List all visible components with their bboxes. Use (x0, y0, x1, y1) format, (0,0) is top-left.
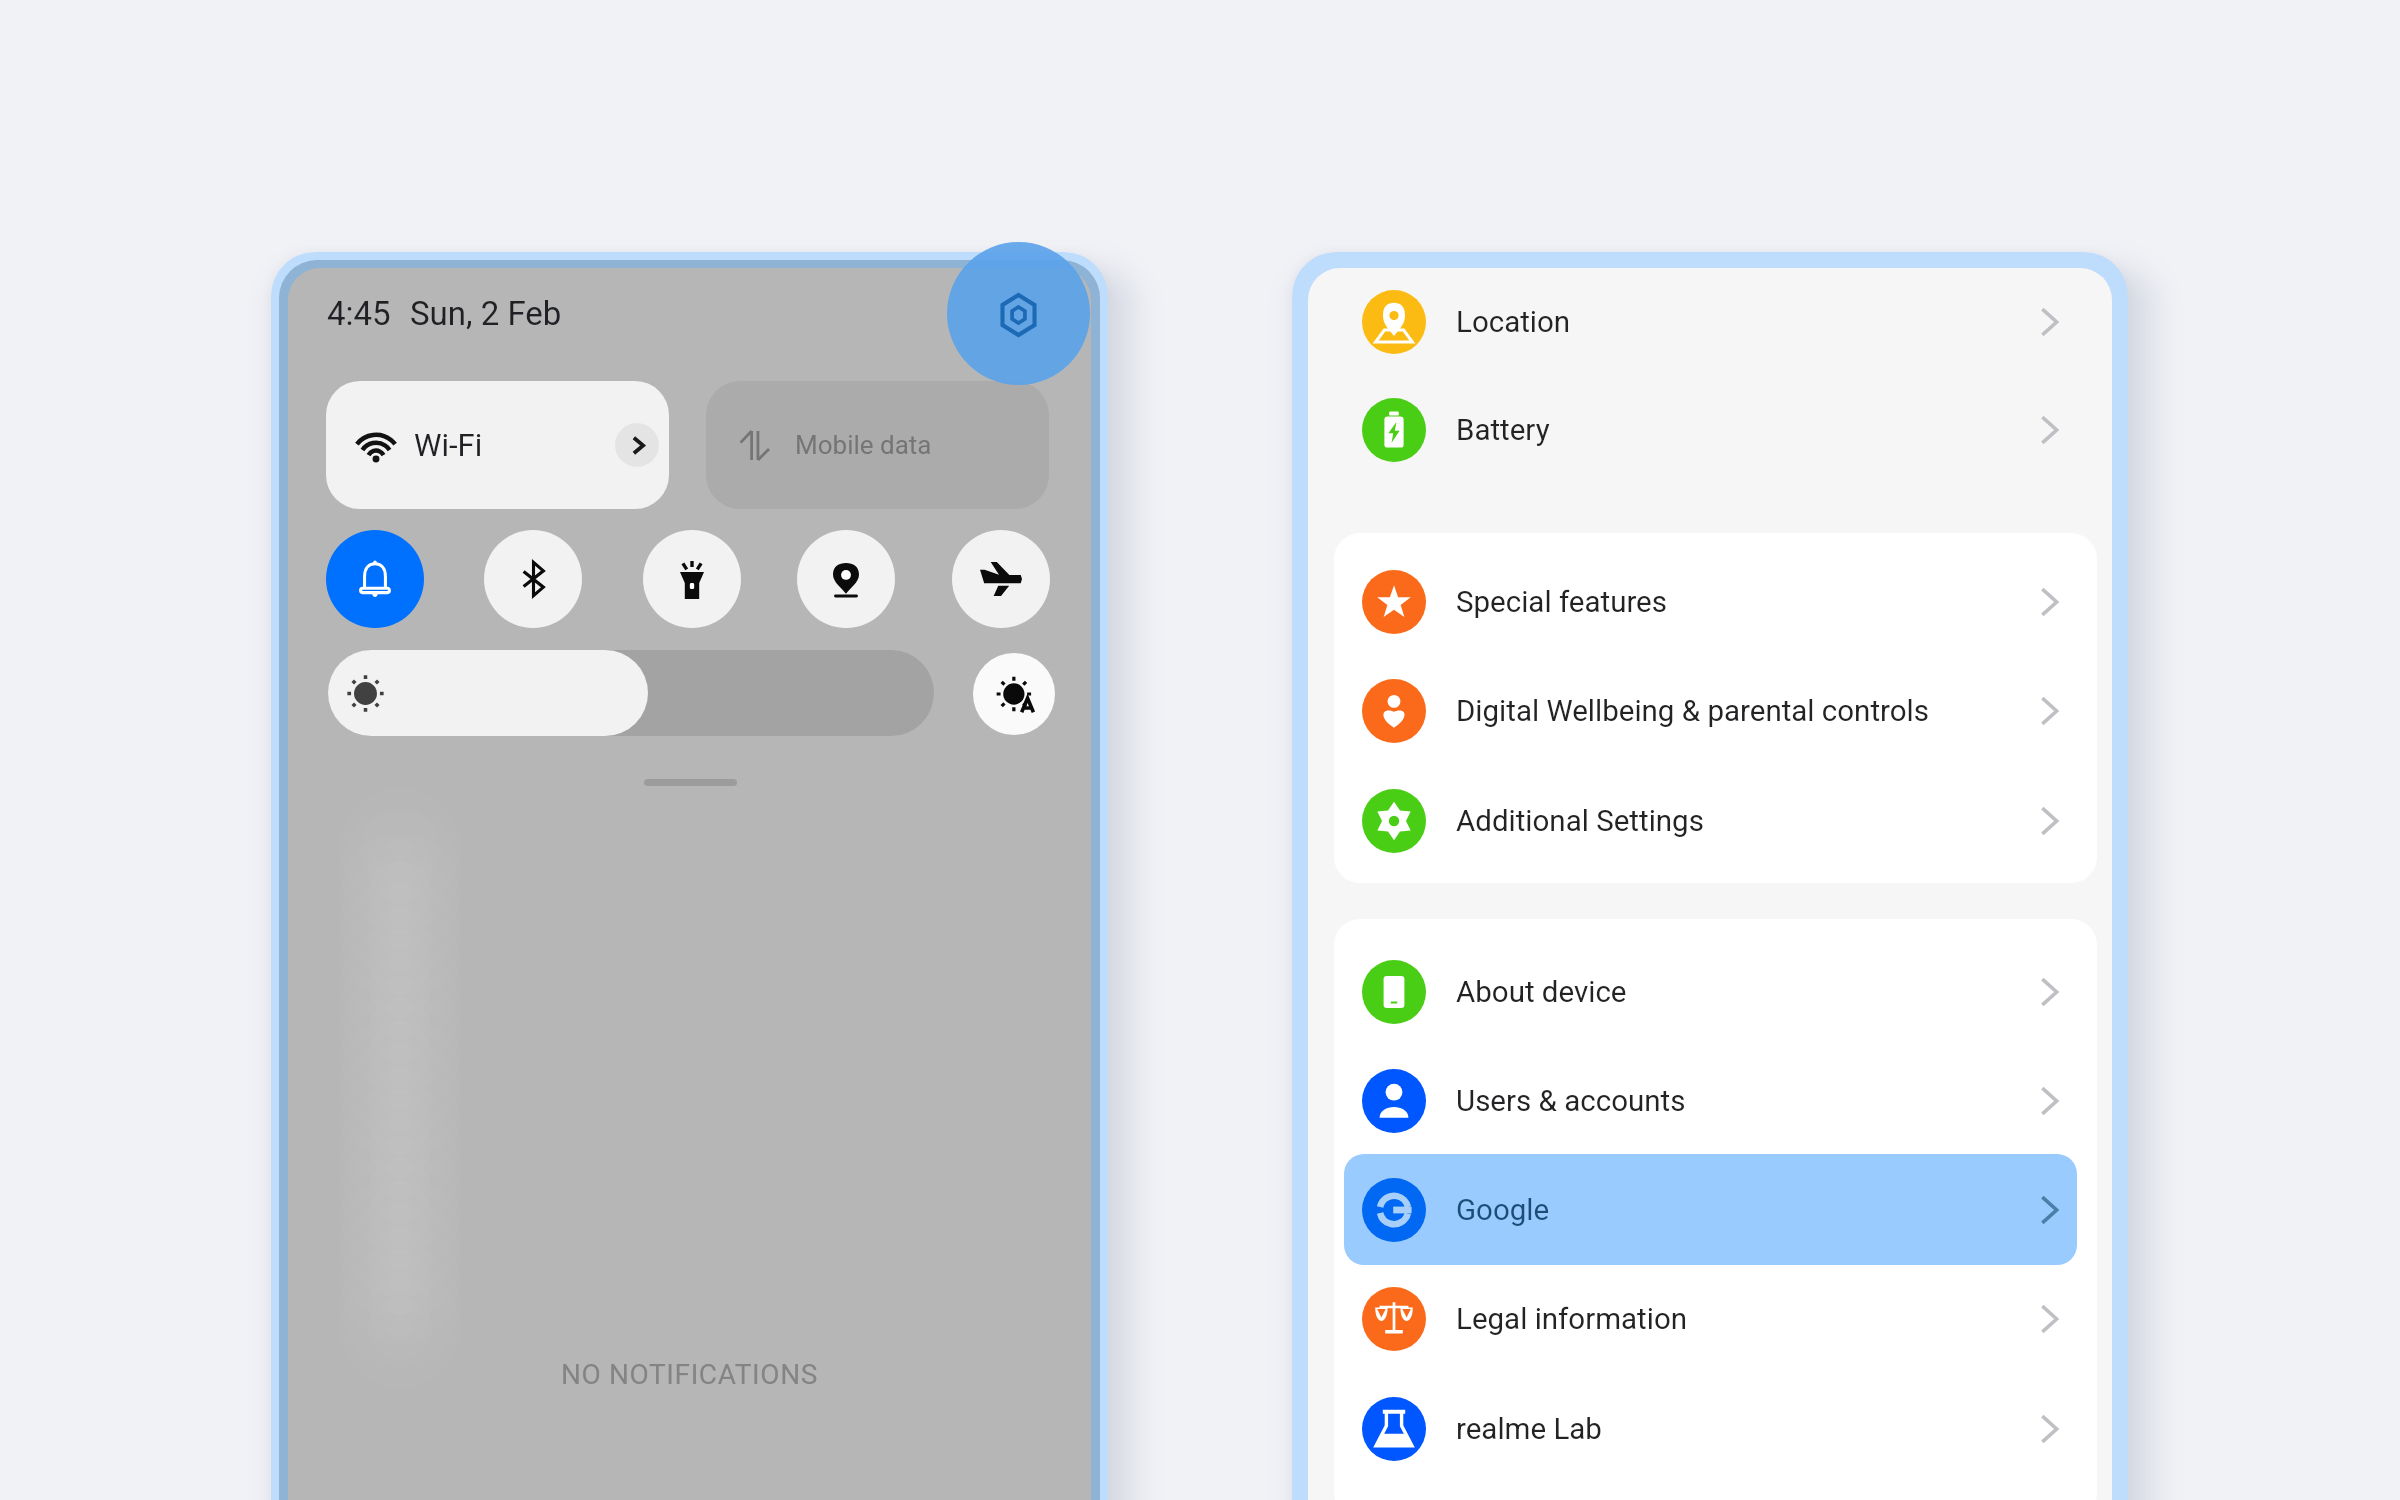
button[interactable]: Google (1344, 1156, 2077, 1264)
button[interactable]: Digital Wellbeing & parental controls (1344, 657, 2077, 765)
button[interactable]: Location (797, 530, 895, 628)
button[interactable]: About device (1344, 938, 2077, 1046)
staticText: Battery (1456, 413, 1550, 448)
button[interactable]: Brightness (328, 650, 648, 736)
button[interactable]: Additional Settings (1344, 767, 2077, 875)
button[interactable]: Wi-Fi (326, 381, 669, 509)
staticText: 4:45 (327, 294, 391, 333)
button[interactable]: Battery (1344, 376, 2077, 484)
staticText: Additional Settings (1456, 804, 1704, 839)
button[interactable]: Mobile data (706, 381, 1049, 509)
button[interactable]: Settings (947, 242, 1090, 385)
button[interactable]: Flashlight (643, 530, 741, 628)
button[interactable]: Do not disturb (326, 530, 424, 628)
staticText: Wi-Fi (414, 427, 483, 463)
staticText: Users & accounts (1456, 1084, 1686, 1119)
staticText: Mobile data (795, 430, 932, 460)
button[interactable]: Users & accounts (1344, 1047, 2077, 1155)
button[interactable]: Auto brightness (973, 653, 1055, 735)
button[interactable] (1344, 1154, 2077, 1265)
staticText: Digital Wellbeing & parental controls (1456, 694, 1929, 729)
button[interactable]: Airplane mode (952, 530, 1050, 628)
staticText: Legal information (1456, 1302, 1688, 1337)
staticText: Google (1456, 1193, 1550, 1228)
staticText: NO NOTIFICATIONS (561, 1358, 818, 1391)
staticText: Special features (1456, 585, 1667, 620)
staticText: realme Lab (1456, 1412, 1602, 1447)
button[interactable]: Special features (1344, 548, 2077, 656)
staticText: Location (1456, 305, 1571, 340)
button[interactable]: Location (1344, 268, 2077, 376)
button[interactable]: Bluetooth (484, 530, 582, 628)
staticText: About device (1456, 975, 1627, 1010)
button[interactable]: realme Lab (1344, 1375, 2077, 1483)
staticText: Sun, 2 Feb (410, 294, 562, 333)
button[interactable]: Legal information (1344, 1265, 2077, 1373)
